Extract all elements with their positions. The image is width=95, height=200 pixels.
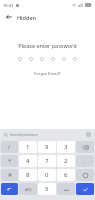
button[interactable]: / [1,141,18,153]
staticText: / [8,143,11,151]
button[interactable]: Forgot Email? [31,70,64,78]
button[interactable]: 5 [38,183,56,195]
button[interactable]: Space [57,183,75,195]
button[interactable]: Back [4,12,14,22]
staticText: Please enter password [18,42,77,49]
staticText: 8 [26,171,30,179]
button[interactable]: Backspace [76,141,94,153]
button[interactable]: # [1,169,18,181]
staticText: Secretly welcome [10,132,38,137]
button[interactable]: Emoji [76,169,94,181]
staticText: 9 [45,143,49,151]
staticText: 2 [64,157,68,165]
staticText: 5 [45,185,49,193]
button[interactable]: 1 [19,141,37,153]
staticText: 4 [26,157,30,165]
button[interactable]: 7 [38,155,56,167]
button[interactable]: 9 [38,141,56,153]
staticText: Forgot Email? [34,71,61,77]
button[interactable]: 6 [57,169,75,181]
button[interactable]: ABC [19,183,37,195]
staticText: # [8,171,12,179]
button[interactable]: 3 [57,141,75,153]
staticText: * [8,157,12,165]
staticText: 6 [64,171,68,179]
button[interactable]: Secretly welcome [3,131,39,138]
staticText: ABC [25,187,32,192]
button[interactable]: 2 [57,155,75,167]
button[interactable]: 0 [38,169,56,181]
staticText: 0 [45,171,49,179]
button[interactable]: * [1,155,18,167]
staticText: 1 [26,143,30,151]
staticText: 10:41 [3,3,14,8]
button[interactable]: Keyboard settings [85,131,92,138]
staticText: 3 [64,143,68,151]
button[interactable]: Shift [1,183,18,195]
staticText: Hidden [17,14,37,21]
button[interactable]: 4 [19,155,37,167]
button[interactable]: Enter [76,183,94,195]
staticText: . [84,157,86,165]
staticText: 7 [45,157,49,165]
button[interactable]: 8 [19,169,37,181]
